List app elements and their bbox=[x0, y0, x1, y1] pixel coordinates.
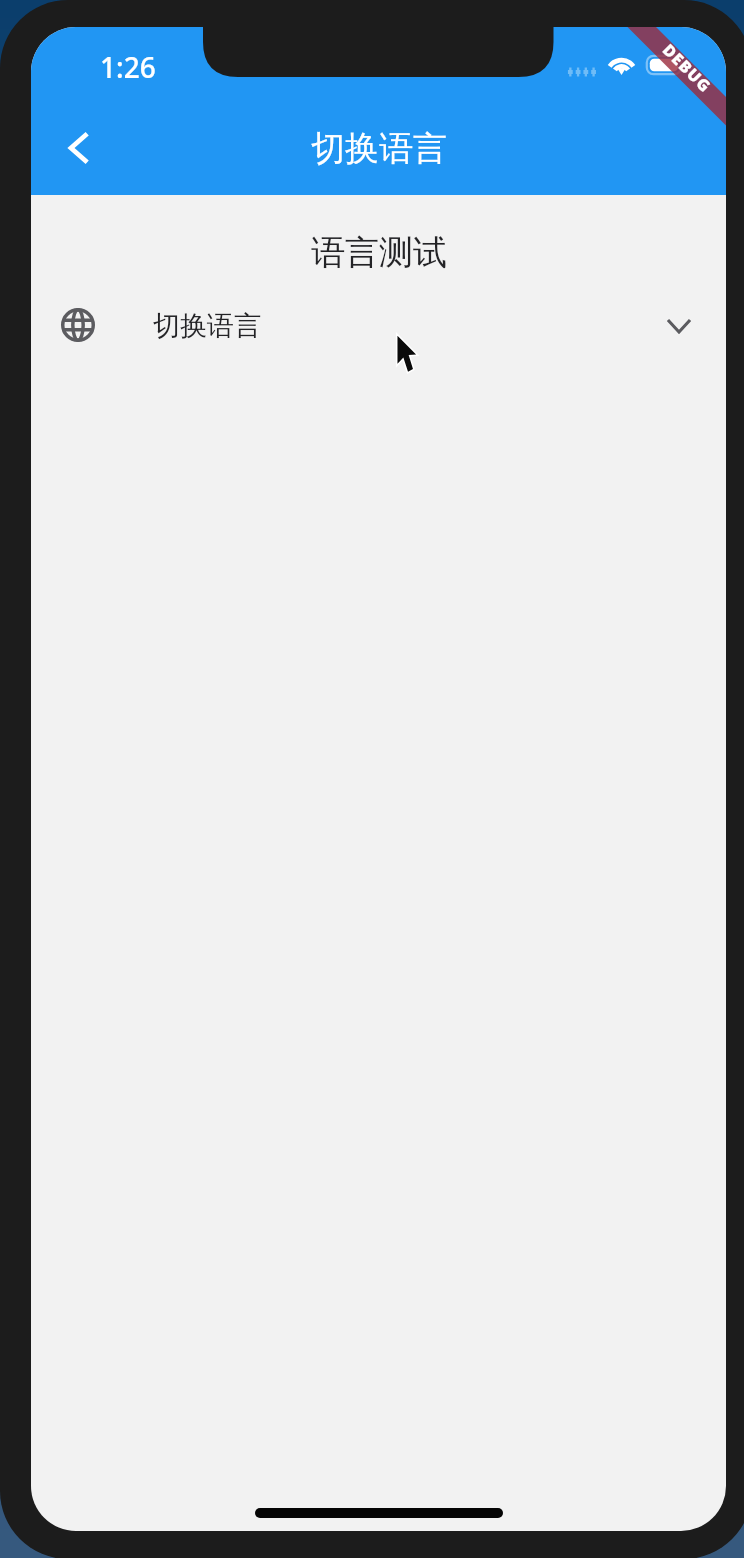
staticText: 切换语言 bbox=[311, 127, 447, 167]
staticText: DEBUG bbox=[658, 39, 717, 98]
button[interactable]: 切换语言 bbox=[31, 295, 726, 355]
button[interactable]: Back bbox=[45, 115, 111, 181]
staticText: 语言测试 bbox=[311, 231, 447, 272]
staticText: 切换语言 bbox=[153, 309, 261, 343]
staticText: 1:26 bbox=[100, 48, 156, 84]
